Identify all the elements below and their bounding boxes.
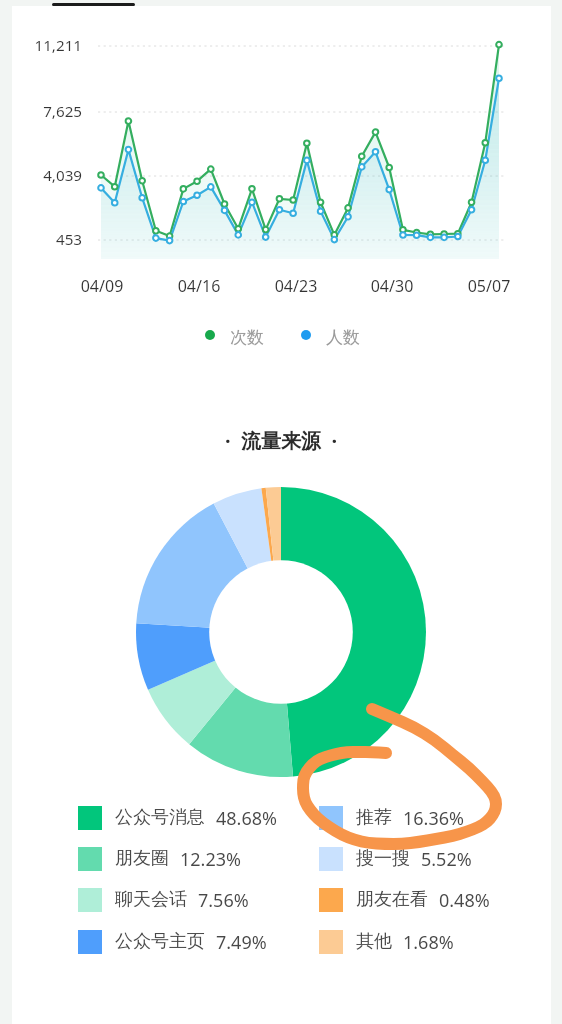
staticText: 朋友在看 [356, 888, 428, 911]
staticText: 0.48% [439, 888, 490, 913]
staticText: 11,211 [0, 35, 82, 56]
staticText: 16.36% [403, 806, 464, 831]
staticText: 5.52% [421, 847, 472, 872]
staticText: 7.56% [198, 888, 249, 913]
staticText: 公众号主页 [115, 930, 205, 953]
staticText: 人数 [326, 327, 360, 348]
button[interactable]: 公众号主页 [78, 926, 288, 958]
button[interactable]: 人数 [298, 326, 378, 352]
staticText: 4,039 [0, 165, 82, 186]
button[interactable]: 其他 [319, 926, 529, 958]
staticText: 04/30 [362, 275, 422, 297]
button[interactable]: 朋友在看 [319, 884, 529, 916]
staticText: 7,625 [0, 101, 82, 122]
staticText: 12.23% [180, 847, 241, 872]
button[interactable]: 朋友圈 [78, 843, 288, 875]
staticText: 04/23 [266, 275, 326, 297]
staticText: 1.68% [403, 930, 454, 955]
staticText: 7.49% [216, 930, 267, 955]
button[interactable]: 搜一搜 [319, 843, 529, 875]
staticText: 次数 [230, 327, 264, 348]
staticText: 453 [0, 229, 82, 250]
button[interactable]: 推荐 [319, 802, 529, 834]
button[interactable]: 公众号消息 [78, 802, 288, 834]
staticText: 公众号消息 [115, 806, 205, 829]
staticText: 其他 [356, 930, 392, 953]
staticText: 05/07 [459, 275, 519, 297]
staticText: 48.68% [216, 806, 277, 831]
staticText: · 流量来源 · [0, 427, 562, 1024]
staticText: 聊天会话 [115, 888, 187, 911]
staticText: 朋友圈 [115, 847, 169, 870]
button[interactable]: 聊天会话 [78, 884, 288, 916]
staticText: 搜一搜 [356, 847, 410, 870]
staticText: 推荐 [356, 806, 392, 829]
staticText: 04/16 [169, 275, 229, 297]
staticText: 04/09 [72, 275, 132, 297]
button[interactable]: 次数 [202, 326, 282, 352]
